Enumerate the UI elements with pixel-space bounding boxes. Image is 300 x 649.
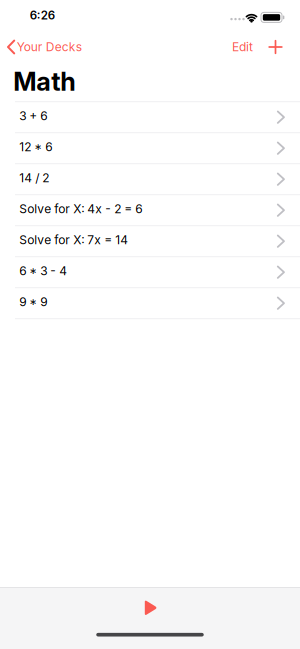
button[interactable]: 3 + 6	[0, 102, 300, 132]
staticText: 9 * 9	[19, 295, 47, 309]
button[interactable]: Edit	[232, 31, 253, 63]
staticText: 14 / 2	[19, 171, 49, 185]
button[interactable]: 12 * 6	[0, 133, 300, 163]
staticText: Your Decks	[17, 40, 82, 54]
staticText: 12 * 6	[19, 140, 52, 154]
button[interactable]: Solve for X: 7x = 14	[0, 226, 300, 256]
staticText: 6 * 3 - 4	[19, 264, 67, 278]
button[interactable]: 14 / 2	[0, 164, 300, 194]
button[interactable]: 9 * 9	[0, 288, 300, 318]
staticText: Solve for X: 4x - 2 = 6	[19, 202, 142, 216]
button[interactable]: Play	[135, 590, 167, 625]
button[interactable]: Solve for X: 4x - 2 = 6	[0, 195, 300, 225]
button[interactable]: 6 * 3 - 4	[0, 257, 300, 287]
button[interactable]: Your Decks	[0, 31, 82, 63]
staticText: Math	[13, 66, 76, 97]
staticText: 3 + 6	[19, 109, 47, 123]
staticText: Solve for X: 7x = 14	[19, 233, 128, 247]
staticText: Edit	[232, 40, 253, 54]
staticText: 6:26	[30, 8, 55, 22]
button[interactable]: Add	[263, 35, 288, 59]
